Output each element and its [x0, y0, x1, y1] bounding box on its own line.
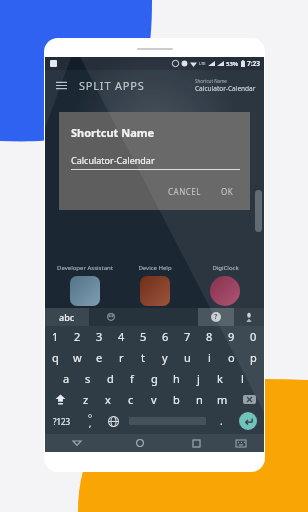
button[interactable]: Change language — [101, 410, 125, 432]
staticText: s — [85, 371, 91, 386]
button[interactable]: j — [187, 368, 209, 389]
button[interactable]: l — [231, 368, 253, 389]
staticText: DigiClock — [212, 264, 239, 272]
staticText: 6 — [162, 329, 169, 344]
button[interactable]: Open navigation menu — [53, 77, 69, 93]
staticText: w — [73, 350, 82, 365]
button[interactable]: x — [97, 389, 119, 410]
button[interactable]: Developer Assistant — [49, 264, 120, 306]
button[interactable]: OK — [215, 183, 240, 200]
button[interactable]: z — [75, 389, 97, 410]
staticText: d — [107, 371, 114, 386]
button[interactable]: d — [99, 368, 121, 389]
button[interactable]: 6 — [154, 326, 176, 347]
button[interactable]: ?123 — [45, 410, 79, 432]
button[interactable]: 5 — [132, 326, 154, 347]
staticText: CANCEL — [168, 186, 201, 197]
button[interactable]: a — [56, 368, 77, 389]
button[interactable]: abc — [45, 308, 89, 326]
staticText: e — [96, 350, 103, 365]
staticText: Shortcut Name — [71, 125, 155, 140]
button[interactable]: DigiClock — [190, 264, 260, 306]
staticText: OK — [221, 186, 234, 197]
staticText: k — [217, 371, 223, 386]
staticText: 1 — [52, 329, 59, 344]
staticText: f — [130, 371, 134, 386]
button[interactable]: u — [176, 347, 198, 368]
button[interactable]: 8 — [198, 326, 220, 347]
button[interactable]: n — [188, 389, 211, 410]
button[interactable]: 0 — [242, 326, 264, 347]
staticText: b — [173, 392, 180, 407]
staticText: LTE — [199, 61, 206, 66]
button[interactable]: Hide keyboard — [221, 434, 260, 452]
button[interactable]: o — [220, 347, 242, 368]
button[interactable]: v — [142, 389, 165, 410]
button[interactable]: Back — [45, 434, 108, 452]
button[interactable]: Device Help — [120, 264, 190, 306]
button[interactable]: Voice input — [234, 308, 264, 326]
staticText: . — [220, 414, 223, 428]
staticText: a — [63, 371, 70, 386]
button[interactable]: Recent apps — [172, 434, 221, 452]
button[interactable]: b — [165, 389, 188, 410]
staticText: Shortcut Name — [195, 78, 227, 84]
staticText: 53% — [226, 60, 239, 68]
staticText: Calculator-Calendar — [71, 154, 155, 166]
staticText: 0 — [250, 329, 257, 344]
button[interactable]: 9 — [220, 326, 242, 347]
staticText: j — [197, 371, 200, 386]
button[interactable]: h — [165, 368, 187, 389]
button[interactable]: p — [242, 347, 264, 368]
button[interactable]: m — [211, 389, 234, 410]
button[interactable]: Home — [108, 434, 172, 452]
staticText: abc — [59, 311, 75, 323]
staticText: r — [119, 350, 124, 365]
staticText: h — [173, 371, 180, 386]
button[interactable]: 4 — [110, 326, 132, 347]
staticText: Device Help — [138, 264, 172, 272]
button[interactable]: g — [143, 368, 165, 389]
staticText: i — [208, 350, 211, 365]
staticText: Developer Assistant — [57, 264, 113, 272]
staticText: 3 — [96, 329, 103, 344]
staticText: x — [105, 392, 111, 407]
button[interactable]: q — [45, 347, 66, 368]
button[interactable]: c — [119, 389, 142, 410]
button[interactable]: 2 — [66, 326, 88, 347]
staticText: 7:23 — [247, 59, 260, 68]
button[interactable]: s — [77, 368, 99, 389]
staticText: 9 — [228, 329, 235, 344]
button[interactable]: Period — [210, 410, 232, 432]
staticText: z — [83, 392, 89, 407]
button[interactable]: Shift — [45, 389, 75, 410]
staticText: SPLIT APPS — [79, 78, 145, 93]
button[interactable]: w — [66, 347, 88, 368]
button[interactable]: y — [154, 347, 176, 368]
button[interactable]: r — [110, 347, 132, 368]
button[interactable]: 7 — [176, 326, 198, 347]
staticText: l — [241, 371, 244, 386]
button[interactable]: f — [121, 368, 143, 389]
staticText: o — [228, 350, 235, 365]
button[interactable]: CANCEL — [162, 183, 207, 200]
staticText: 5 — [140, 329, 147, 344]
button[interactable]: 3 — [88, 326, 110, 347]
button[interactable]: Help — [198, 308, 234, 326]
staticText: 4 — [118, 329, 125, 344]
button[interactable]: k — [209, 368, 231, 389]
button[interactable]: Emoji and sticker — [89, 308, 198, 326]
button[interactable]: e — [88, 347, 110, 368]
button[interactable]: 1 — [45, 326, 66, 347]
button[interactable]: Backspace — [234, 389, 264, 410]
button[interactable]: i — [198, 347, 220, 368]
button[interactable]: Enter — [232, 410, 264, 432]
button[interactable]: t — [132, 347, 154, 368]
staticText: 7 — [184, 329, 191, 344]
button[interactable]: Comma — [79, 410, 101, 432]
staticText: c — [128, 392, 134, 407]
staticText: y — [162, 350, 168, 365]
staticText: t — [141, 350, 145, 365]
staticText: n — [196, 392, 203, 407]
